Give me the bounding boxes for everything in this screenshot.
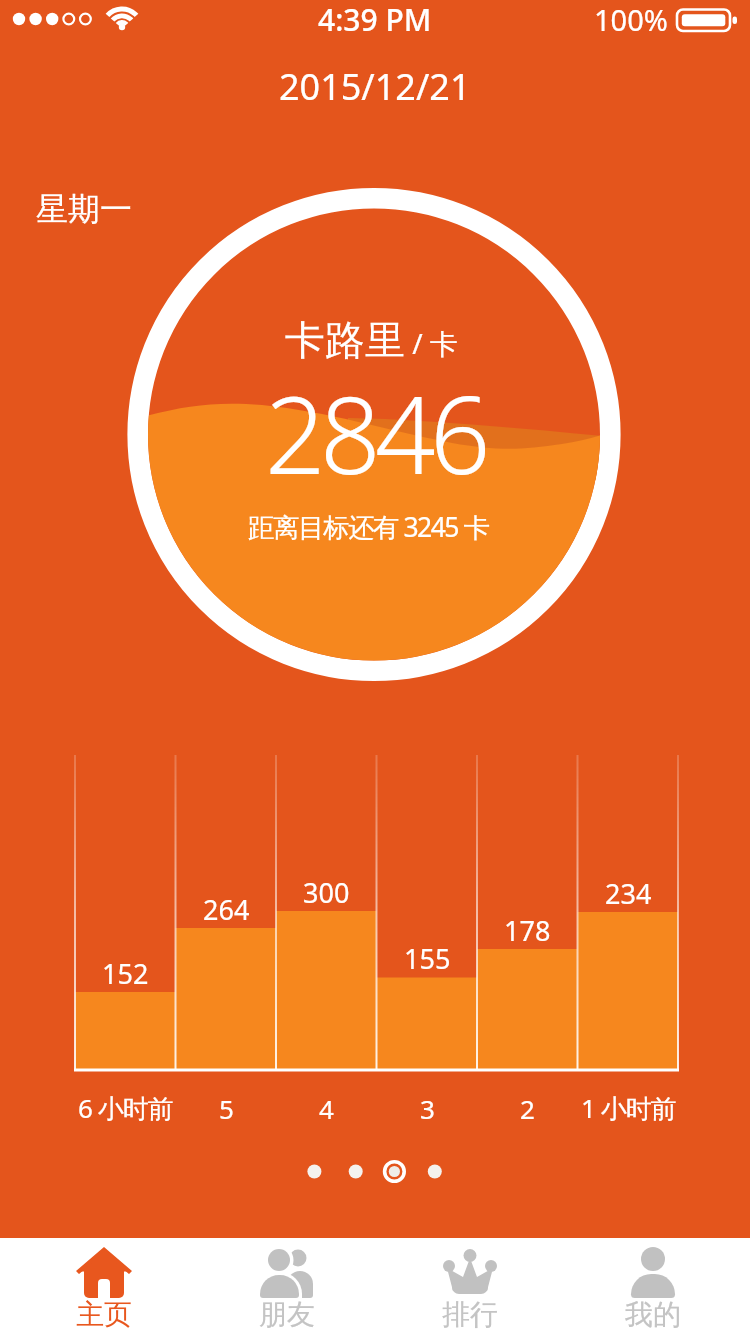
button[interactable]: 主页	[13, 1238, 195, 1334]
staticText: 朋友	[259, 1297, 315, 1332]
staticText: 3	[420, 1091, 434, 1126]
staticText: 4:39 PM	[318, 0, 432, 40]
staticText: 6 小时前	[78, 1090, 173, 1126]
staticText: 星期一	[36, 189, 132, 229]
staticText: 264	[203, 891, 250, 928]
staticText: 178	[504, 912, 551, 949]
staticText: 4	[319, 1091, 333, 1126]
staticText: 2015/12/21	[279, 62, 471, 111]
staticText: 主页	[76, 1297, 132, 1332]
staticText: 100%	[594, 0, 668, 39]
staticText: 距离目标还有 3245 卡	[248, 509, 489, 545]
staticText: 5	[219, 1091, 233, 1126]
staticText: 卡路里 / 卡	[285, 315, 458, 365]
staticText: 300	[303, 874, 350, 911]
button[interactable]: 朋友	[196, 1238, 378, 1334]
button[interactable]: 我的	[562, 1238, 744, 1334]
staticText: 234	[605, 875, 652, 912]
staticText: 我的	[625, 1297, 681, 1332]
staticText: 152	[102, 955, 149, 992]
staticText: 2	[520, 1091, 534, 1126]
staticText: 1 小时前	[581, 1090, 676, 1126]
staticText: 155	[404, 940, 451, 977]
staticText: 2846	[265, 361, 486, 481]
staticText: 排行	[442, 1297, 498, 1332]
button[interactable]: 排行	[379, 1238, 561, 1334]
